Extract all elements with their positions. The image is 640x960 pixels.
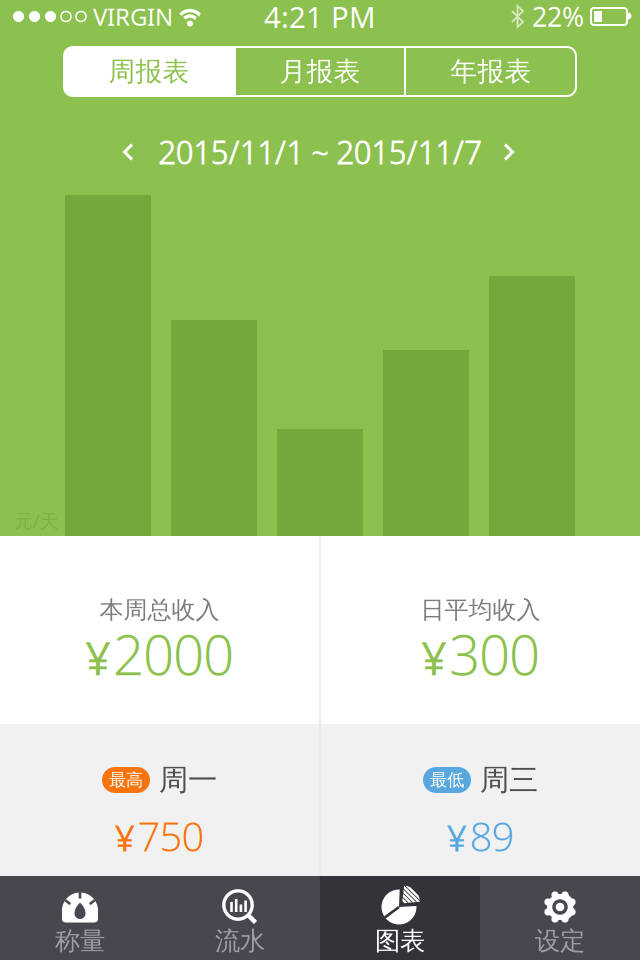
staticText: VIRGIN bbox=[93, 1, 173, 32]
staticText: 2000 bbox=[113, 618, 234, 690]
staticText: 22% bbox=[532, 0, 584, 34]
button[interactable]: 月报表 bbox=[236, 47, 404, 96]
staticText: 周一 bbox=[159, 762, 217, 798]
staticText: ¥ bbox=[446, 814, 467, 861]
staticText: 750 bbox=[137, 809, 204, 862]
button[interactable]: 图表 bbox=[320, 876, 480, 960]
staticText: 年报表 bbox=[450, 55, 531, 88]
staticText: 流水 bbox=[215, 925, 265, 956]
button[interactable]: 设定 bbox=[480, 876, 640, 960]
staticText: 元/天 bbox=[14, 508, 59, 533]
staticText: 4:21 PM bbox=[264, 0, 376, 36]
staticText: 日平均收入 bbox=[420, 595, 540, 625]
button[interactable]: 周报表 bbox=[64, 47, 234, 96]
staticText: 最低 bbox=[430, 769, 464, 791]
staticText: 设定 bbox=[535, 925, 585, 956]
button[interactable]: 流水 bbox=[160, 876, 320, 960]
staticText: 称量 bbox=[55, 925, 105, 956]
staticText: 本周总收入 bbox=[99, 595, 219, 625]
button[interactable]: 年报表 bbox=[406, 47, 576, 96]
staticText: ¥ bbox=[114, 814, 135, 861]
button[interactable]: 称量 bbox=[0, 876, 160, 960]
staticText: 周报表 bbox=[108, 55, 189, 88]
staticText: 最高 bbox=[109, 769, 143, 791]
staticText: 89 bbox=[469, 809, 514, 862]
staticText: 月报表 bbox=[279, 55, 360, 88]
button[interactable]: Next week bbox=[496, 135, 522, 168]
staticText: 图表 bbox=[375, 925, 425, 956]
staticText: ¥ bbox=[421, 627, 447, 688]
button[interactable]: Previous week bbox=[115, 135, 141, 168]
staticText: 2015/11/1 ~ 2015/11/7 bbox=[158, 131, 482, 173]
staticText: ¥ bbox=[85, 627, 111, 688]
staticText: 300 bbox=[449, 618, 540, 690]
staticText: 周三 bbox=[480, 762, 538, 798]
